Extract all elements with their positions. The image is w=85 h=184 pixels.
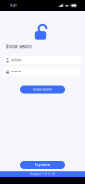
staticText: Iniciar sesión [6,43,32,49]
button[interactable]: Iniciar sesión [20,85,65,93]
staticText: 9:41 [10,3,17,8]
staticText: Registrarse [34,163,50,167]
staticText: Version 1.0 (1.0) [30,172,55,176]
button[interactable]: Registrarse [20,161,65,169]
staticText: jroldan [11,58,22,62]
staticText: Iniciar sesión [33,88,52,91]
